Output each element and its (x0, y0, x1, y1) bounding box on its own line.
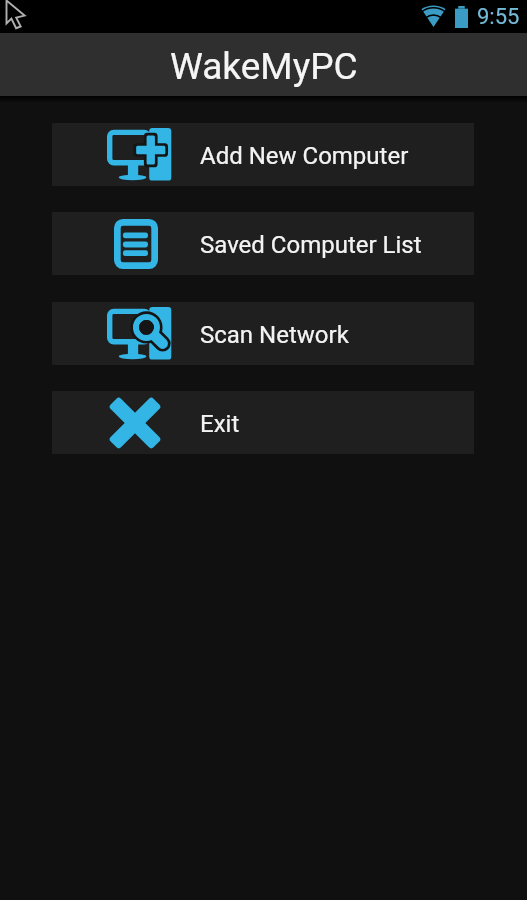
button[interactable]: Scan Network (52, 302, 474, 365)
staticText: Add New Computer (200, 142, 409, 170)
staticText: 9:55 (477, 4, 520, 30)
staticText: Exit (200, 410, 240, 438)
staticText: Saved Computer List (200, 231, 422, 259)
button[interactable]: Saved Computer List (52, 212, 474, 275)
button[interactable]: Add New Computer (52, 123, 474, 186)
button[interactable]: Exit (52, 391, 474, 454)
staticText: Scan Network (200, 321, 349, 349)
staticText: WakeMyPC (170, 45, 358, 88)
